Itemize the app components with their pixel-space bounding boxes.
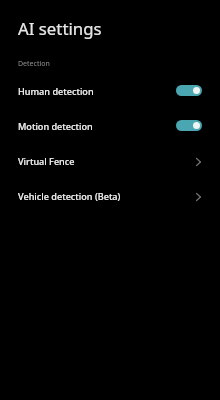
staticText: Virtual Fence [18,155,75,167]
button[interactable]: On [176,85,202,96]
staticText: Detection [18,59,50,69]
button[interactable]: Virtual Fence [0,143,220,178]
staticText: Vehicle detection (Beta) [18,190,121,202]
other: Open Vehicle detection (Beta) [196,193,201,201]
button[interactable]: On [176,120,202,131]
staticText: Motion detection [18,120,93,132]
staticText: AI settings [18,17,102,40]
button[interactable]: Vehicle detection (Beta) [0,178,220,213]
staticText: Human detection [18,85,94,97]
button[interactable]: Human detection [0,73,220,108]
other: Open Virtual Fence [196,158,201,166]
button[interactable]: Motion detection [0,108,220,143]
